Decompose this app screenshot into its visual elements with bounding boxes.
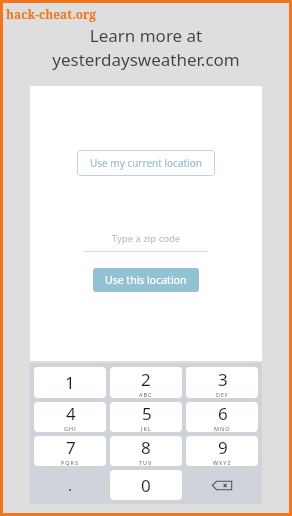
button[interactable]: 7 (34, 436, 106, 466)
staticText: Learn more at yesterdaysweather.com (11, 24, 281, 71)
button[interactable]: 8 (110, 436, 182, 466)
staticText: hack-cheat.org (6, 6, 97, 22)
button[interactable]: 4 (34, 402, 106, 432)
staticText: Use this location (105, 273, 187, 287)
button[interactable]: 3 (186, 367, 258, 398)
button[interactable]: Use this location (93, 268, 199, 292)
staticText: TUV (139, 459, 153, 466)
staticText: 2 (141, 368, 151, 391)
button[interactable]: Use my current location (77, 150, 215, 176)
button[interactable]: . (34, 470, 106, 500)
staticText: 0 (141, 474, 151, 497)
staticText: 8 (141, 436, 151, 459)
staticText: 6 (218, 402, 228, 425)
button[interactable]: 6 (186, 402, 258, 432)
staticText: MNO (214, 425, 231, 432)
staticText: 3 (218, 368, 228, 391)
button[interactable]: 5 (110, 402, 182, 432)
staticText: Use my current location (90, 156, 202, 170)
staticText: . (68, 475, 73, 495)
staticText: ABC (139, 391, 153, 398)
staticText: JKL (141, 425, 152, 432)
staticText: Type a zip code (112, 232, 181, 245)
staticText: 7 (66, 436, 76, 459)
staticText: WXYZ (213, 459, 232, 466)
button[interactable]: Backspace (186, 470, 258, 500)
staticText: 5 (142, 402, 152, 425)
staticText: 4 (66, 402, 76, 425)
button[interactable]: 9 (186, 436, 258, 466)
button[interactable]: 2 (110, 367, 182, 398)
staticText: 9 (218, 436, 228, 459)
staticText: PQRS (61, 459, 80, 466)
button[interactable]: 0 (110, 470, 182, 500)
button[interactable]: 1 (34, 367, 106, 398)
button[interactable]: Type a zip code (84, 232, 208, 252)
staticText: GHI (64, 425, 77, 432)
staticText: 1 (65, 371, 75, 394)
staticText: DEF (216, 391, 229, 398)
